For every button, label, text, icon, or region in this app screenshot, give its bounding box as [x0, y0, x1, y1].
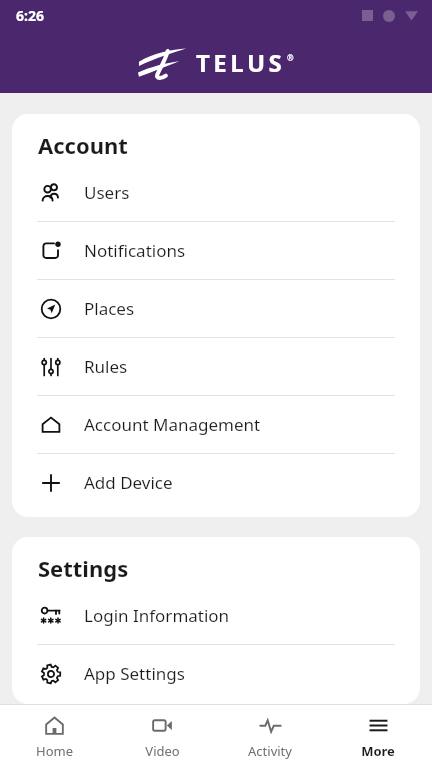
staticText: Activity	[248, 742, 292, 760]
staticText: Video	[145, 742, 180, 760]
button[interactable]: Places	[12, 280, 420, 337]
button[interactable]: App Settings	[12, 645, 420, 702]
button[interactable]: Home	[0, 707, 108, 766]
staticText: TELUS	[196, 46, 286, 79]
button[interactable]: Rules	[12, 338, 420, 395]
button[interactable]: More	[324, 707, 432, 766]
staticText: Notifications	[84, 239, 186, 262]
staticText: Add Device	[84, 471, 173, 494]
button[interactable]: Video	[108, 707, 216, 766]
button[interactable]: Login Information	[12, 587, 420, 644]
staticText: 6:26	[16, 6, 44, 25]
staticText: Account Management	[84, 413, 261, 436]
button[interactable]: Users	[12, 164, 420, 221]
staticText: Login Information	[84, 604, 230, 627]
staticText: More	[361, 742, 395, 760]
button[interactable]: Notifications	[12, 222, 420, 279]
staticText: Places	[84, 297, 135, 320]
staticText: Rules	[84, 355, 128, 378]
button[interactable]: Account Management	[12, 396, 420, 453]
other: TELUS logo	[138, 48, 186, 78]
staticText: App Settings	[84, 662, 185, 685]
button[interactable]: Activity	[216, 707, 324, 766]
button[interactable]: Add Device	[12, 454, 420, 511]
staticText: Account	[38, 130, 128, 160]
staticText: Users	[84, 181, 130, 204]
staticText: ®	[287, 52, 294, 63]
staticText: Settings	[38, 553, 129, 583]
staticText: Home	[36, 742, 73, 760]
